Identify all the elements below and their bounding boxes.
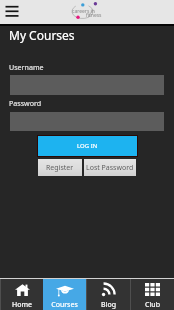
staticText: Courses bbox=[51, 300, 78, 310]
staticText: Password bbox=[9, 98, 42, 108]
button[interactable]: Register bbox=[38, 159, 82, 176]
button[interactable]: Courses bbox=[43, 279, 86, 310]
button[interactable]: Lost Password bbox=[84, 159, 136, 176]
button[interactable]: Blog bbox=[86, 279, 130, 310]
staticText: Register bbox=[46, 163, 74, 173]
staticText: LOG IN bbox=[77, 142, 98, 150]
staticText: Blog bbox=[101, 300, 116, 310]
button[interactable]: Club bbox=[130, 279, 174, 310]
staticText: Username bbox=[9, 62, 44, 72]
button[interactable]: Home bbox=[0, 279, 43, 310]
staticText: fitness bbox=[86, 12, 102, 19]
staticText: careers in bbox=[72, 8, 95, 15]
button[interactable]: Open navigation menu bbox=[0, 0, 26, 24]
staticText: Lost Password bbox=[86, 163, 134, 173]
button[interactable]: LOG IN bbox=[38, 136, 137, 156]
staticText: My Courses bbox=[9, 27, 75, 43]
staticText: Home bbox=[12, 300, 32, 310]
staticText: Club bbox=[145, 300, 160, 310]
